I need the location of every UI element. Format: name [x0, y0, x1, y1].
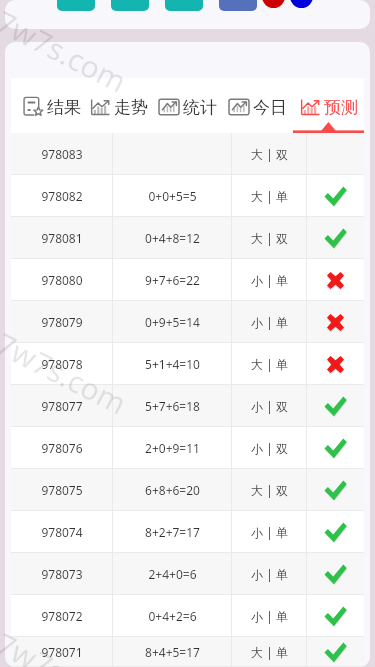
- button[interactable]: 978079: [11, 301, 364, 343]
- staticText: 0+4+8=12: [145, 230, 200, 246]
- staticText: 大 | 双: [251, 230, 288, 246]
- button[interactable]: 978073: [11, 553, 364, 595]
- staticText: 6+8+6=20: [145, 482, 200, 498]
- button[interactable]: 978078: [11, 343, 364, 385]
- button[interactable]: 走势: [81, 78, 151, 133]
- button[interactable]: 978081: [11, 217, 364, 259]
- staticText: 978073: [41, 566, 83, 582]
- staticText: 978083: [41, 146, 83, 162]
- staticText: 大 | 双: [251, 482, 288, 498]
- staticText: 预测: [324, 97, 358, 118]
- staticText: 小 | 单: [251, 608, 288, 624]
- staticText: 小 | 单: [251, 524, 288, 540]
- button[interactable]: 978074: [11, 511, 364, 553]
- staticText: 小 | 双: [251, 440, 288, 456]
- staticText: 978077: [41, 398, 83, 414]
- staticText: 大 | 单: [251, 644, 288, 660]
- staticText: 今日: [253, 97, 287, 118]
- staticText: 7w7s.com: [0, 1, 134, 101]
- button[interactable]: 预测: [293, 78, 364, 133]
- staticText: 978082: [41, 188, 83, 204]
- staticText: 978078: [41, 356, 83, 372]
- button[interactable]: 978077: [11, 385, 364, 427]
- staticText: 大 | 单: [251, 356, 288, 372]
- staticText: 8+4+5=17: [145, 644, 200, 660]
- button[interactable]: 结果: [11, 78, 81, 133]
- staticText: 0+9+5=14: [145, 314, 200, 330]
- staticText: 978076: [41, 440, 83, 456]
- staticText: 7w7s.com: [0, 323, 134, 423]
- staticText: 978072: [41, 608, 83, 624]
- button[interactable]: 978080: [11, 259, 364, 301]
- staticText: 小 | 单: [251, 314, 288, 330]
- staticText: 结果: [47, 97, 81, 118]
- staticText: 7w7s.com: [0, 623, 134, 667]
- button[interactable]: 978075: [11, 469, 364, 511]
- staticText: 978075: [41, 482, 83, 498]
- staticText: 978081: [41, 230, 83, 246]
- staticText: 走势: [114, 97, 148, 118]
- staticText: 978080: [41, 272, 83, 288]
- staticText: 大 | 单: [251, 188, 288, 204]
- button[interactable]: 978071: [11, 637, 364, 667]
- staticText: 978079: [41, 314, 83, 330]
- staticText: 978074: [41, 524, 83, 540]
- staticText: 大 | 双: [251, 146, 288, 162]
- button[interactable]: 978072: [11, 595, 364, 637]
- staticText: 2+4+0=6: [148, 566, 197, 582]
- staticText: 小 | 单: [251, 566, 288, 582]
- staticText: 统计: [183, 97, 217, 118]
- button[interactable]: 978082: [11, 175, 364, 217]
- button[interactable]: 978083: [11, 133, 364, 175]
- button[interactable]: 统计: [151, 78, 222, 133]
- staticText: 978071: [41, 644, 83, 660]
- staticText: 小 | 单: [251, 272, 288, 288]
- button[interactable]: 今日: [222, 78, 293, 133]
- staticText: 5+7+6=18: [145, 398, 200, 414]
- staticText: 2+0+9=11: [145, 440, 200, 456]
- staticText: 5+1+4=10: [145, 356, 200, 372]
- staticText: 0+4+2=6: [148, 608, 197, 624]
- staticText: 0+0+5=5: [148, 188, 197, 204]
- staticText: 8+2+7=17: [145, 524, 200, 540]
- staticText: 小 | 双: [251, 398, 288, 414]
- button[interactable]: 978076: [11, 427, 364, 469]
- staticText: 9+7+6=22: [145, 272, 200, 288]
